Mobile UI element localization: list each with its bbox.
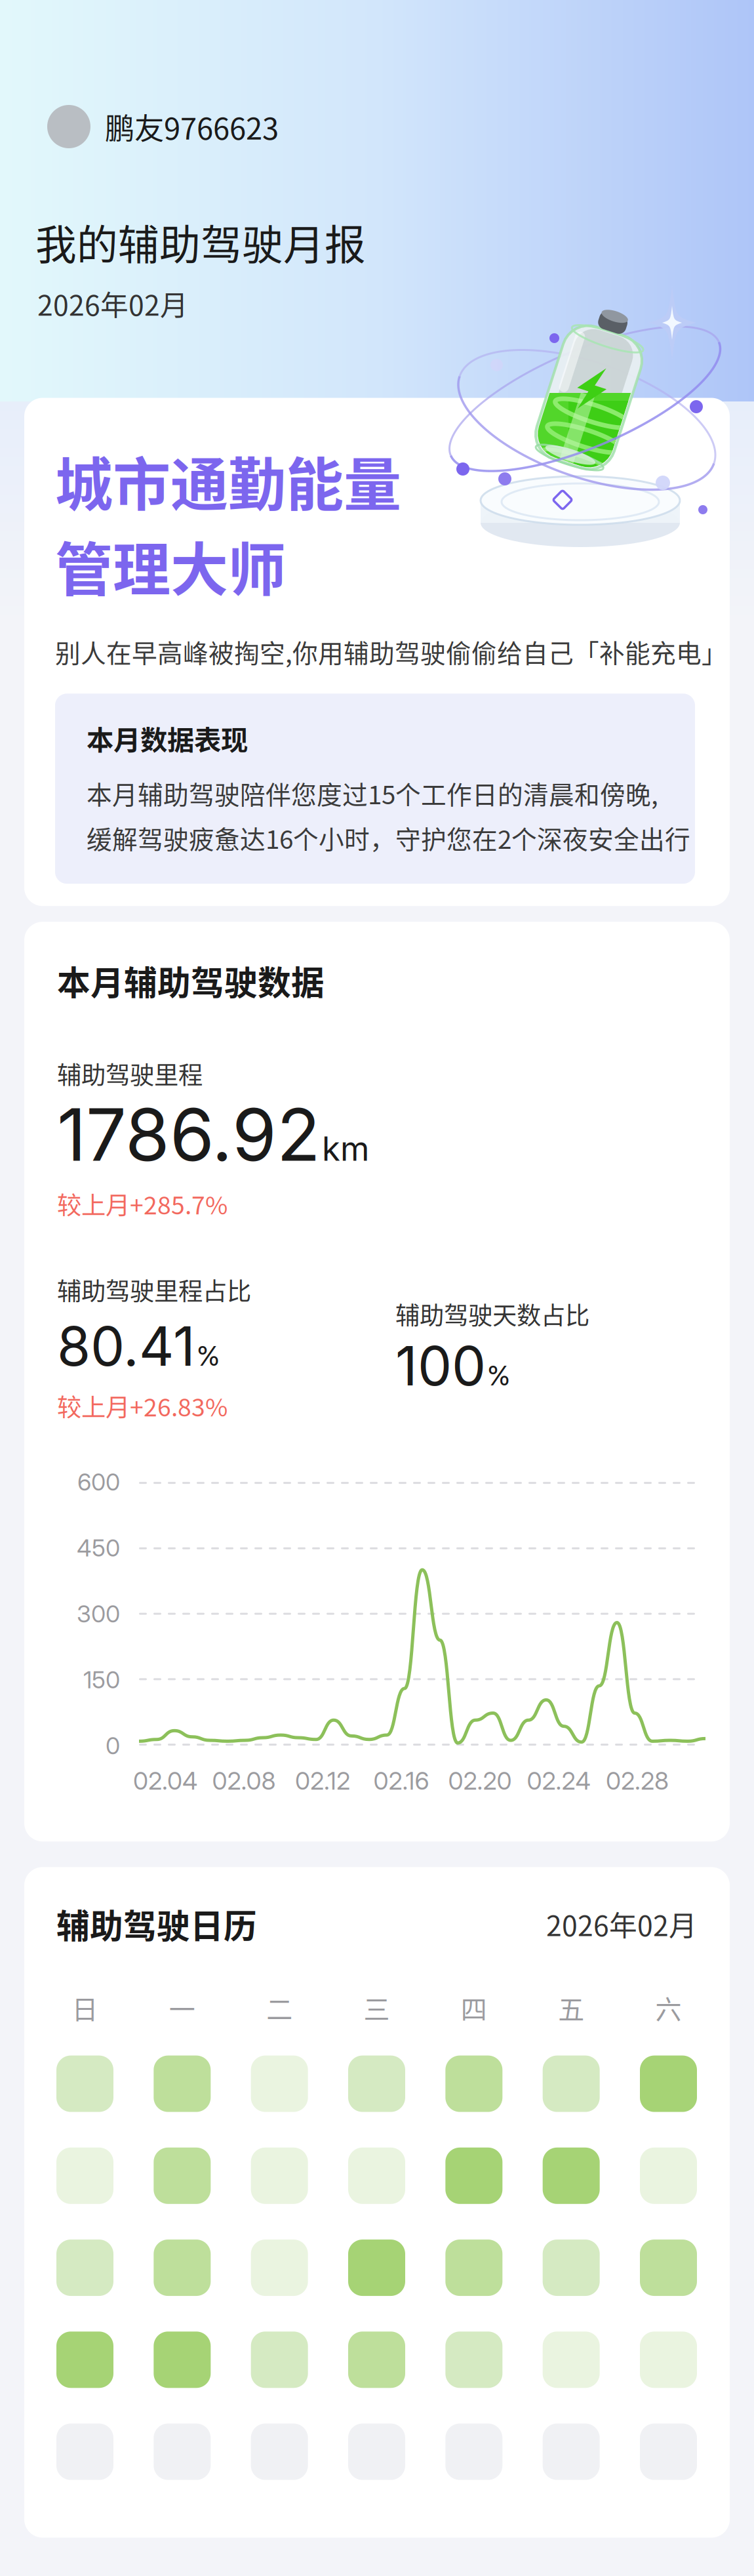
staticText: 本月数据表现 [87, 719, 248, 758]
staticText: % [487, 1359, 510, 1392]
staticText: 100 [395, 1333, 486, 1399]
staticText: 2026年02月 [546, 1904, 697, 1944]
staticText: 我的辅助驾驶月报 [35, 212, 366, 271]
staticText: 城市通勤能量 [55, 439, 401, 522]
staticText: 辅助驾驶里程占比 [57, 1272, 251, 1307]
staticText: 辅助驾驶里程 [57, 1056, 203, 1091]
staticText: 日 [72, 1989, 98, 2027]
staticText: 五 [558, 1989, 584, 2027]
staticText: 较上月+285.7% [57, 1186, 228, 1221]
staticText: 别人在早高峰被掏空,你用辅助驾驶偷偷给自己「补能充电」 [55, 633, 727, 670]
staticText: 150 [83, 1665, 120, 1694]
staticText: 本月辅助驾驶数据 [57, 957, 325, 1005]
staticText: 02.04 [133, 1766, 197, 1796]
staticText: 本月辅助驾驶陪伴您度过15个工作日的清晨和傍晚, [87, 775, 658, 812]
staticText: 一 [169, 1989, 195, 2027]
staticText: 六 [655, 1989, 682, 2027]
staticText: 2026年02月 [37, 283, 188, 324]
staticText: 02.16 [373, 1766, 429, 1796]
staticText: 四 [461, 1989, 487, 2027]
staticText: 600 [77, 1468, 120, 1496]
staticText: 02.28 [606, 1766, 669, 1796]
staticText: 02.08 [212, 1766, 276, 1796]
staticText: 辅助驾驶天数占比 [395, 1296, 589, 1332]
staticText: 辅助驾驶日历 [56, 1900, 257, 1948]
staticText: 450 [77, 1534, 120, 1562]
staticText: 300 [77, 1599, 120, 1628]
staticText: 管理大师 [55, 523, 286, 607]
staticText: 较上月+26.83% [57, 1388, 228, 1424]
button[interactable]: 鹏友9766623 [47, 105, 279, 148]
staticText: 80.41 [57, 1313, 195, 1379]
staticText: % [197, 1340, 220, 1372]
staticText: 1786.92 [57, 1091, 321, 1178]
staticText: 三 [364, 1989, 390, 2027]
staticText: 0 [106, 1731, 120, 1760]
staticText: 02.12 [295, 1766, 350, 1796]
staticText: 二 [266, 1989, 293, 2027]
staticText: 02.24 [527, 1766, 590, 1796]
staticText: 缓解驾驶疲惫达16个小时，守护您在2个深夜安全出行 [87, 819, 690, 856]
staticText: km [322, 1129, 369, 1169]
staticText: 02.20 [448, 1766, 512, 1796]
staticText: 鹏友9766623 [105, 105, 279, 148]
